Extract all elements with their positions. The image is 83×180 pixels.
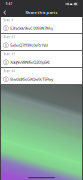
staticText: Share #1	[3, 18, 15, 22]
button[interactable]: Bwt3dX5sGKQw9cT5Pwy	[1, 74, 82, 84]
staticText: 5xfxsQ7ff8Yc0sPz1Vd	[10, 42, 47, 48]
button[interactable]: Back	[1, 8, 9, 17]
staticText: Share #4	[3, 69, 15, 73]
button[interactable]: E3hx9dv9kvC0993N7Mq	[1, 23, 82, 33]
staticText: 9:41	[6, 2, 13, 6]
staticText: Share #2	[3, 35, 15, 39]
staticText: XdqNvV8Nf6sQ2Dlp5Kt	[10, 59, 49, 65]
staticText: Share this parts	[25, 10, 57, 15]
staticText: E3hx9dv9kvC0993N7Mq	[10, 25, 52, 31]
button[interactable]: 5xfxsQ7ff8Yc0sPz1Vd	[1, 40, 82, 50]
button[interactable]: XdqNvV8Nf6sQ2Dlp5Kt	[1, 57, 82, 67]
staticText: Bwt3dX5sGKQw9cT5Pwy	[10, 76, 53, 82]
staticText: Share #3	[3, 52, 15, 56]
